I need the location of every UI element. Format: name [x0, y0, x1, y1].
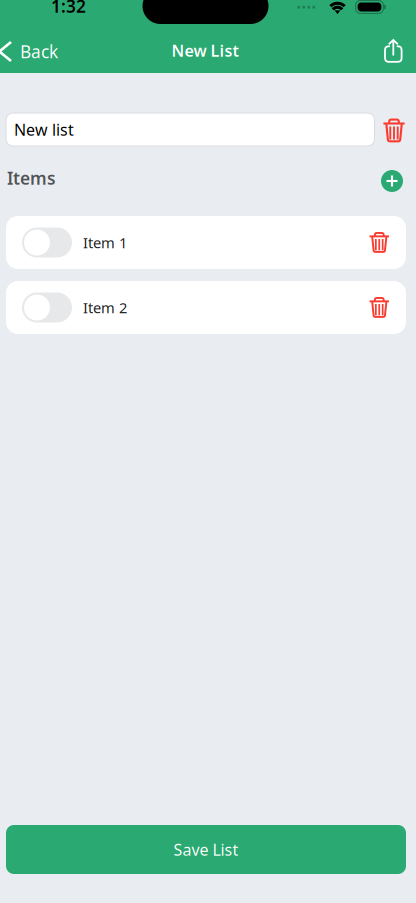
- staticText: Item 2: [83, 298, 127, 317]
- staticText: Items: [7, 166, 56, 189]
- staticText: New List: [171, 40, 238, 61]
- button[interactable]: Save List: [6, 825, 406, 874]
- button[interactable]: Add item: [380, 167, 402, 189]
- staticText: 1:32: [51, 0, 86, 17]
- staticText: New list: [14, 119, 74, 140]
- staticText: Save List: [173, 839, 238, 860]
- button[interactable]: Toggle Item 1: [22, 227, 72, 257]
- button[interactable]: Delete list: [383, 117, 405, 141]
- button[interactable]: Delete Item 1: [369, 232, 389, 253]
- button[interactable]: Share: [375, 30, 409, 65]
- button[interactable]: Delete Item 2: [369, 297, 389, 318]
- staticText: Item 1: [83, 233, 127, 252]
- button[interactable]: Back: [1, 28, 68, 67]
- staticText: Back: [20, 40, 58, 63]
- button[interactable]: Toggle Item 2: [22, 292, 72, 322]
- staticText: ••••: [296, 0, 316, 15]
